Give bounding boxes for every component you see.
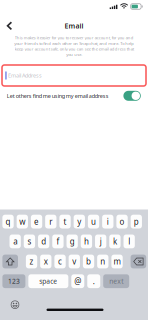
staticText: y bbox=[77, 216, 81, 227]
button[interactable]: d bbox=[38, 234, 49, 248]
staticText: n bbox=[100, 256, 105, 267]
staticText: a bbox=[13, 236, 17, 247]
button[interactable]: n bbox=[97, 255, 108, 268]
button[interactable]: s bbox=[24, 234, 35, 248]
staticText: Email bbox=[64, 21, 83, 30]
button[interactable]: Delete bbox=[131, 255, 146, 268]
staticText: @ bbox=[74, 276, 81, 287]
staticText: c bbox=[58, 256, 62, 267]
staticText: m bbox=[114, 256, 121, 267]
staticText: t bbox=[63, 216, 66, 227]
button[interactable]: y bbox=[74, 215, 85, 228]
staticText: space bbox=[39, 277, 57, 286]
button[interactable]: g bbox=[66, 234, 78, 248]
staticText: Email Address bbox=[8, 72, 42, 79]
staticText: e bbox=[34, 216, 39, 227]
staticText: h bbox=[84, 236, 89, 247]
button[interactable]: z bbox=[26, 255, 37, 268]
staticText: v bbox=[72, 256, 76, 267]
staticText: This makes it easier for you to recover … bbox=[14, 35, 134, 57]
staticText: s bbox=[27, 236, 31, 247]
staticText: q bbox=[6, 216, 11, 227]
staticText: l bbox=[128, 236, 130, 247]
button[interactable]: f bbox=[52, 234, 64, 248]
staticText: w bbox=[19, 216, 25, 227]
staticText: x bbox=[44, 256, 48, 267]
button[interactable]: v bbox=[69, 255, 80, 268]
staticText: Let others find me using my email addres… bbox=[7, 92, 109, 99]
staticText: k bbox=[113, 236, 117, 247]
button[interactable]: t bbox=[59, 215, 71, 228]
staticText: z bbox=[29, 256, 33, 267]
button[interactable]: . bbox=[87, 274, 100, 288]
button[interactable]: r bbox=[45, 215, 56, 228]
button[interactable]: Emoji keyboard bbox=[9, 299, 21, 311]
staticText: p bbox=[134, 216, 139, 227]
button[interactable]: Back bbox=[2, 19, 16, 33]
button[interactable]: @ bbox=[71, 274, 84, 288]
button[interactable]: 123 bbox=[2, 274, 25, 288]
button[interactable]: p bbox=[131, 215, 142, 228]
staticText: r bbox=[49, 216, 52, 227]
button[interactable]: w bbox=[17, 215, 28, 228]
button[interactable]: c bbox=[54, 255, 66, 268]
button[interactable]: Let others find me using my email addres… bbox=[123, 91, 141, 101]
staticText: d bbox=[41, 236, 46, 247]
staticText: next bbox=[109, 277, 123, 286]
button[interactable]: b bbox=[83, 255, 94, 268]
button[interactable]: h bbox=[81, 234, 92, 248]
staticText: j bbox=[100, 236, 102, 247]
button[interactable]: next bbox=[103, 274, 129, 288]
button[interactable]: a bbox=[9, 234, 21, 248]
button[interactable]: m bbox=[111, 255, 123, 268]
staticText: f bbox=[56, 236, 59, 247]
button[interactable]: o bbox=[116, 215, 128, 228]
button[interactable]: i bbox=[102, 215, 113, 228]
button[interactable]: k bbox=[109, 234, 121, 248]
staticText: . bbox=[93, 276, 95, 287]
button[interactable]: space bbox=[28, 274, 68, 288]
staticText: 123 bbox=[8, 277, 20, 286]
button[interactable]: u bbox=[88, 215, 99, 228]
staticText: g bbox=[70, 236, 75, 247]
button[interactable]: Shift bbox=[2, 255, 18, 268]
button[interactable]: x bbox=[40, 255, 51, 268]
staticText: b bbox=[86, 256, 91, 267]
button[interactable]: q bbox=[2, 215, 14, 228]
button[interactable]: e bbox=[31, 215, 42, 228]
staticText: u bbox=[91, 216, 96, 227]
staticText: i bbox=[107, 216, 109, 227]
staticText: o bbox=[120, 216, 125, 227]
button[interactable]: l bbox=[123, 234, 135, 248]
button[interactable]: j bbox=[95, 234, 106, 248]
